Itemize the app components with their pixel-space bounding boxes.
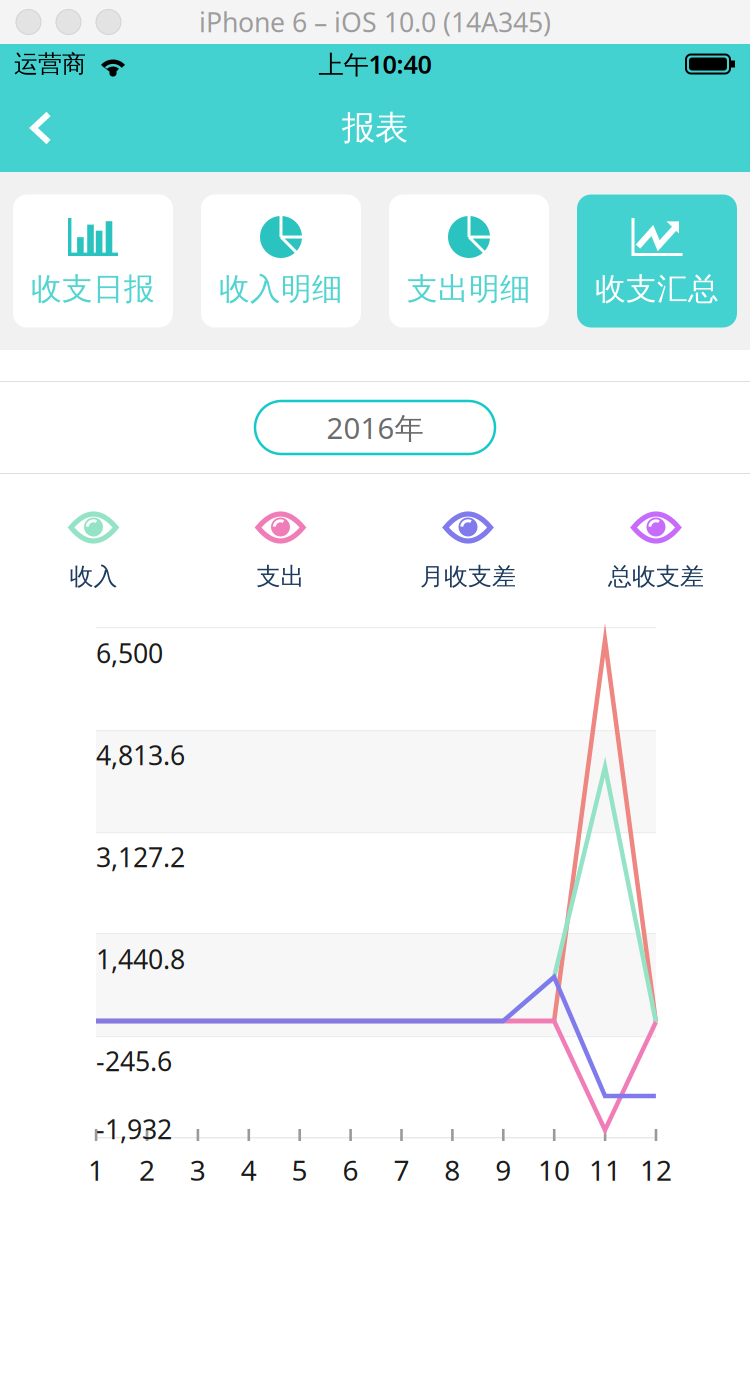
staticText: 收入明细 bbox=[219, 270, 343, 308]
staticText: 7 bbox=[393, 1151, 409, 1189]
staticText: iPhone 6 – iOS 10.0 (14A345) bbox=[199, 4, 551, 40]
button[interactable]: 2016年 bbox=[255, 401, 495, 454]
staticText: 收支汇总 bbox=[595, 270, 719, 308]
button[interactable]: 支出明细 bbox=[389, 194, 549, 327]
staticText: 支出明细 bbox=[407, 270, 531, 308]
button[interactable]: 月收支差 bbox=[374, 511, 562, 587]
staticText: 9 bbox=[495, 1151, 511, 1189]
staticText: 10 bbox=[538, 1151, 570, 1189]
button[interactable]: 收入 bbox=[0, 511, 187, 587]
button[interactable]: Back bbox=[8, 84, 74, 172]
staticText: 3,127.2 bbox=[96, 839, 185, 875]
staticText: 11 bbox=[589, 1151, 621, 1189]
staticText: 12 bbox=[640, 1151, 672, 1189]
staticText: 2 bbox=[139, 1151, 155, 1189]
staticText: 2016年 bbox=[326, 408, 423, 447]
staticText: 上午10:40 bbox=[318, 47, 431, 81]
staticText: 支出 bbox=[256, 562, 304, 591]
staticText: 5 bbox=[292, 1151, 308, 1189]
staticText: 1 bbox=[88, 1151, 104, 1189]
button[interactable]: 总收支差 bbox=[562, 511, 750, 587]
staticText: 8 bbox=[444, 1151, 460, 1189]
staticText: 报表 bbox=[342, 107, 408, 148]
staticText: 4,813.6 bbox=[96, 737, 185, 773]
button[interactable]: 收入明细 bbox=[201, 194, 361, 327]
staticText: 6,500 bbox=[96, 635, 163, 671]
staticText: 总收支差 bbox=[608, 562, 704, 591]
staticText: 运营商 bbox=[14, 49, 86, 79]
button[interactable]: 收支汇总 bbox=[577, 194, 737, 327]
staticText: -1,932 bbox=[96, 1111, 172, 1147]
staticText: 4 bbox=[241, 1151, 257, 1189]
staticText: 6 bbox=[342, 1151, 358, 1189]
staticText: 收入 bbox=[69, 562, 117, 591]
staticText: 3 bbox=[190, 1151, 206, 1189]
staticText: 月收支差 bbox=[420, 562, 516, 591]
button[interactable]: 收支日报 bbox=[13, 194, 173, 327]
button[interactable]: 支出 bbox=[187, 511, 374, 587]
staticText: -245.6 bbox=[96, 1043, 172, 1079]
staticText: 1,440.8 bbox=[96, 941, 185, 977]
staticText: 收支日报 bbox=[31, 270, 155, 308]
